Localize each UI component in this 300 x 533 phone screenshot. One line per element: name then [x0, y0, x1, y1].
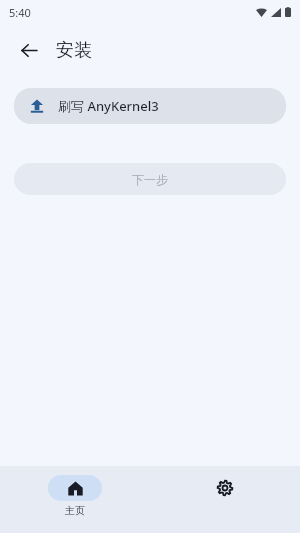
- button[interactable]: Settings: [150, 466, 300, 533]
- button[interactable]: Home: [0, 466, 150, 533]
- button[interactable]: Back: [12, 33, 46, 67]
- button[interactable]: 下一步: [14, 163, 286, 195]
- staticText: 5:40: [9, 5, 31, 20]
- staticText: 主页: [65, 504, 85, 517]
- staticText: 刷写 AnyKernel3: [58, 97, 159, 115]
- staticText: 安装: [56, 39, 92, 62]
- staticText: 下一步: [132, 172, 168, 187]
- button[interactable]: 刷写 AnyKernel3: [14, 88, 286, 124]
